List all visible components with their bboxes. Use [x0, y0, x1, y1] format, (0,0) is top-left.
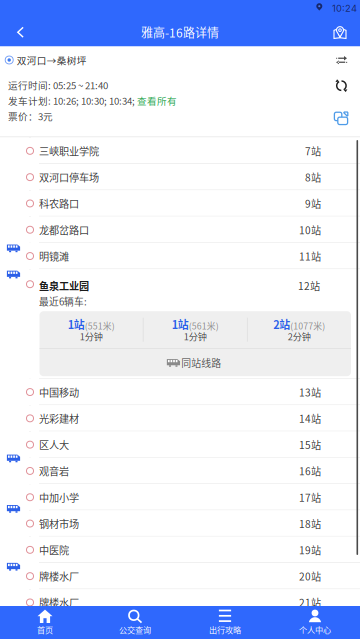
staticText: 票价：3元 — [8, 109, 53, 123]
staticText: 明镜滩 — [39, 249, 69, 263]
staticText: 出行攻略 — [209, 624, 241, 635]
staticText: 21站 — [299, 595, 321, 610]
staticText: 钢材市场 — [39, 516, 79, 531]
staticText: 11站 — [299, 249, 321, 263]
button[interactable]: 钢材市场 — [0, 510, 360, 537]
staticText: 15站 — [299, 437, 321, 452]
button[interactable]: Show on map — [325, 18, 355, 46]
button[interactable]: 明镜滩 — [0, 243, 360, 269]
button[interactable]: 出行攻略 — [180, 606, 270, 639]
button[interactable]: 双河口停车场 — [0, 164, 360, 190]
button[interactable]: 牌楼水厂 — [0, 589, 360, 616]
staticText: 7站 — [305, 143, 321, 158]
staticText: 中加小学 — [39, 490, 79, 505]
staticText: 1分钟 — [80, 329, 103, 343]
button[interactable]: 查看所有 — [137, 93, 177, 107]
button[interactable]: Back — [2, 18, 38, 46]
staticText: 牌楼水厂 — [39, 595, 79, 610]
button[interactable]: 同站线路 — [39, 349, 351, 376]
button[interactable]: 光彩建材 — [0, 405, 360, 431]
staticText: 20站 — [299, 569, 321, 583]
staticText: 8站 — [305, 170, 321, 184]
staticText: 个人中心 — [299, 624, 331, 635]
button[interactable]: 首页 — [0, 606, 90, 639]
staticText: 13站 — [299, 385, 321, 399]
button[interactable]: 中医院 — [0, 537, 360, 563]
staticText: 雅高-16路详情 — [141, 24, 219, 41]
staticText: 光彩建材 — [39, 411, 79, 426]
staticText: 10:24 — [332, 3, 357, 14]
staticText: 鱼泉工业园 — [39, 278, 89, 293]
staticText: 区人大 — [39, 437, 69, 452]
button[interactable]: 中加小学 — [0, 484, 360, 510]
button[interactable]: 牌楼水厂 — [0, 563, 360, 589]
button[interactable]: 观音岩 — [0, 458, 360, 484]
staticText: 科农路口 — [39, 196, 79, 211]
staticText: 三峡职业学院 — [39, 143, 99, 158]
staticText: 同站线路 — [181, 355, 221, 370]
button[interactable]: Refresh — [328, 74, 354, 98]
staticText: 2分钟 — [288, 329, 311, 343]
button[interactable]: 龙都岔路口 — [0, 217, 360, 243]
button[interactable]: 区人大 — [0, 431, 360, 458]
staticText: 12站 — [298, 278, 320, 293]
staticText: 牌楼水厂 — [39, 569, 79, 583]
staticText: 10站 — [299, 222, 321, 237]
staticText: 运行时间: 05:25 ~ 21:40 — [8, 78, 108, 92]
staticText: 观音岩 — [39, 464, 69, 478]
staticText: 17站 — [299, 490, 321, 505]
staticText: 1站 — [68, 316, 85, 332]
staticText: 最近6辆车: — [39, 294, 87, 308]
staticText: 18站 — [299, 516, 321, 531]
staticText: 中国移动 — [39, 385, 79, 399]
button[interactable]: Share route — [328, 106, 354, 130]
button[interactable]: 科农路口 — [0, 190, 360, 217]
staticText: 9站 — [305, 196, 321, 211]
staticText: 首页 — [37, 624, 53, 635]
staticText: 14站 — [299, 411, 321, 426]
staticText: (551米) — [85, 319, 115, 332]
staticText: 双河口停车场 — [39, 170, 99, 184]
staticText: 中医院 — [39, 542, 69, 557]
staticText: 公交查询 — [119, 624, 151, 635]
button[interactable]: 中国移动 — [0, 379, 360, 405]
staticText: (1077米) — [290, 319, 325, 332]
staticText: 2站 — [273, 316, 290, 332]
staticText: (561米) — [189, 319, 219, 332]
button[interactable]: 三峡职业学院 — [0, 138, 360, 164]
staticText: 发车计划: 10:26; 10:30; 10:34; — [8, 93, 137, 107]
button[interactable]: 公交查询 — [90, 606, 180, 639]
staticText: 1站 — [172, 316, 189, 332]
staticText: 16站 — [299, 464, 321, 478]
staticText: 查看所有 — [137, 93, 177, 107]
staticText: 19站 — [299, 542, 321, 557]
staticText: 龙都岔路口 — [39, 222, 89, 237]
button[interactable]: Reverse direction — [328, 49, 354, 71]
staticText: 双河口→桑树坪 — [17, 53, 87, 67]
button[interactable]: 个人中心 — [270, 606, 360, 639]
staticText: 1分钟 — [184, 329, 207, 343]
